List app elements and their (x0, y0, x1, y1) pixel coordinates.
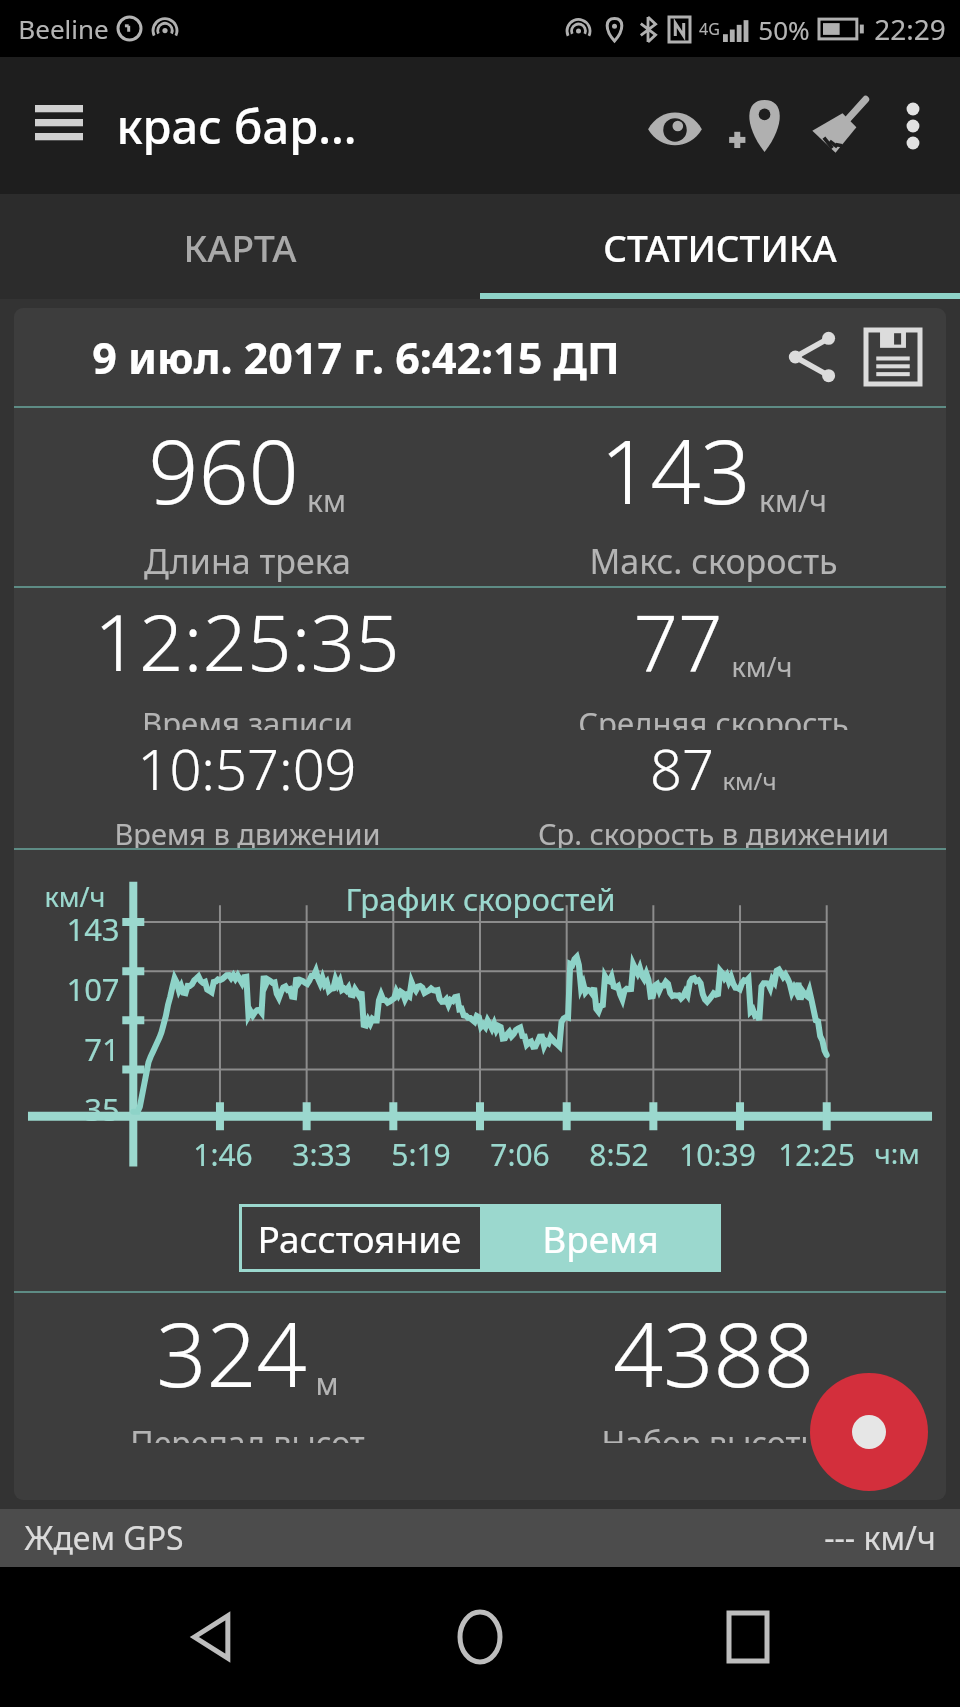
staticText: 71 (84, 1028, 120, 1070)
staticText: км/ч (731, 648, 793, 685)
button[interactable]: 960 (14, 408, 480, 586)
button[interactable]: Расстояние (239, 1204, 480, 1272)
button[interactable]: СТАТИСТИКА (480, 194, 960, 299)
staticText: км/ч (722, 764, 777, 797)
button[interactable]: Home (424, 1581, 536, 1693)
staticText: Расстояние (257, 1213, 462, 1263)
button[interactable]: Recents (692, 1581, 804, 1693)
staticText: Средняя скорость (578, 702, 849, 730)
staticText: 35 (84, 1088, 120, 1130)
staticText: 107 (66, 968, 120, 1010)
staticText: Время в движении (114, 814, 381, 848)
button[interactable]: Menu (22, 89, 96, 163)
button[interactable]: КАРТА (0, 194, 480, 299)
staticText: Набор высоты (601, 1421, 825, 1443)
button[interactable]: More options (880, 93, 946, 159)
button[interactable]: Add waypoint (716, 85, 798, 167)
button[interactable]: Время (480, 1204, 721, 1272)
staticText: 960 (148, 410, 299, 530)
staticText: 87 (650, 730, 714, 806)
staticText: 10:57:09 (137, 730, 357, 806)
staticText: 143 (66, 908, 120, 950)
staticText: 77 (633, 588, 723, 694)
staticText: Длина трека (144, 538, 351, 584)
button[interactable]: Back (156, 1581, 268, 1693)
button[interactable]: 4388 (480, 1293, 946, 1443)
button[interactable]: 143 (480, 408, 946, 586)
staticText: 50% (758, 12, 810, 47)
staticText: км/ч (44, 878, 106, 915)
button[interactable]: 12:25:35 (14, 588, 480, 730)
staticText: Перепад высот (130, 1421, 365, 1443)
button[interactable]: Show track (634, 85, 716, 167)
staticText: 7:06 (490, 1134, 550, 1175)
staticText: График скоростей (345, 878, 616, 920)
staticText: 1:46 (193, 1134, 253, 1175)
staticText: Время (542, 1213, 659, 1263)
button[interactable]: 324 (14, 1293, 480, 1443)
staticText: Макс. скорость (589, 538, 838, 584)
button[interactable]: 77 (480, 588, 946, 730)
staticText: 3:33 (292, 1134, 352, 1175)
staticText: ч:м (874, 1134, 920, 1172)
staticText: 12:25 (778, 1134, 855, 1175)
staticText: --- км/ч (824, 1516, 936, 1560)
staticText: м (315, 1363, 339, 1404)
staticText: КАРТА (183, 222, 297, 272)
staticText: км/ч (759, 480, 827, 521)
staticText: Время записи (142, 702, 353, 730)
staticText: СТАТИСТИКА (603, 222, 837, 272)
staticText: 8:52 (589, 1134, 649, 1175)
button[interactable]: 10:57:09 (14, 730, 480, 848)
button[interactable]: Share (776, 320, 850, 394)
staticText: Beeline (18, 11, 109, 46)
staticText: 5:19 (391, 1134, 451, 1175)
staticText: 9 июл. 2017 г. 6:42:15 ДП (92, 328, 620, 387)
staticText: км (307, 480, 346, 521)
staticText: 22:29 (874, 10, 946, 48)
staticText: Ждем GPS (24, 1516, 184, 1560)
staticText: 12:25:35 (94, 588, 400, 694)
staticText: 4388 (613, 1293, 814, 1413)
staticText: крас бар... (116, 94, 357, 158)
button[interactable]: Clear (798, 85, 880, 167)
staticText: 4G (699, 18, 720, 40)
button[interactable]: Record (810, 1373, 928, 1491)
staticText: 10:39 (679, 1134, 756, 1175)
staticText: 143 (600, 410, 751, 530)
staticText: Ср. скорость в движении (538, 814, 889, 848)
staticText: 324 (156, 1293, 307, 1413)
button[interactable]: Save (856, 320, 930, 394)
button[interactable]: 87 (480, 730, 946, 848)
